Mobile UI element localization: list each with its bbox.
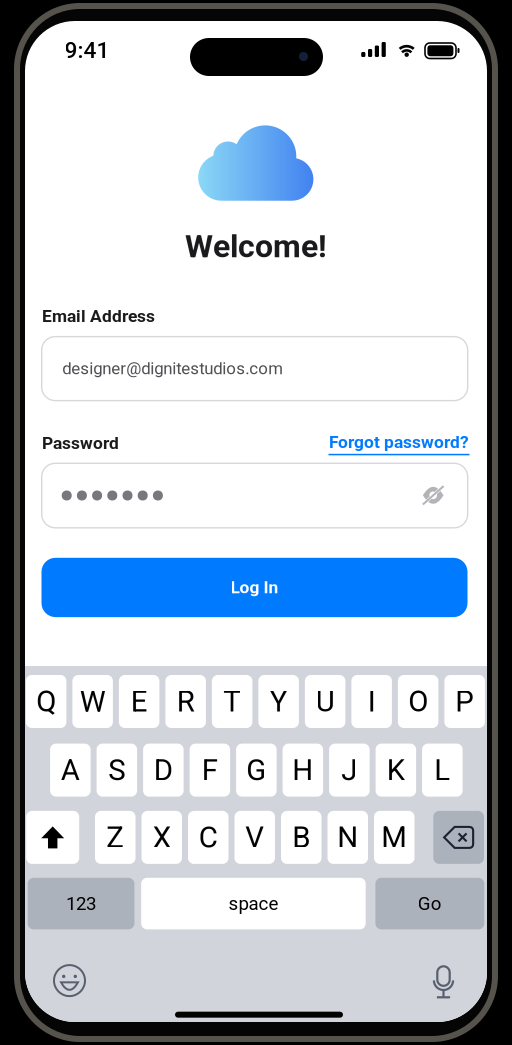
button[interactable]: K	[376, 744, 416, 797]
staticText: Go	[418, 893, 442, 915]
button[interactable]: X	[141, 811, 182, 864]
button[interactable]: Go	[375, 878, 484, 929]
button[interactable]: Q	[26, 675, 66, 728]
button[interactable]: D	[143, 744, 184, 797]
button[interactable]: A	[50, 744, 91, 797]
staticText: V	[245, 820, 264, 855]
button[interactable]: R	[165, 675, 206, 728]
staticText: Welcome!	[185, 227, 327, 265]
staticText: S	[108, 753, 125, 787]
staticText: D	[154, 753, 173, 787]
staticText: I	[368, 684, 376, 719]
staticText: J	[341, 753, 357, 787]
staticText: N	[337, 820, 358, 855]
button[interactable]: U	[305, 675, 345, 728]
staticText: L	[434, 753, 450, 787]
button[interactable]: E	[119, 675, 159, 728]
staticText: Log In	[230, 577, 278, 598]
staticText: E	[131, 684, 148, 719]
button[interactable]: S	[97, 744, 137, 797]
button[interactable]: C	[188, 811, 228, 864]
button[interactable]: Forgot password?	[328, 432, 469, 455]
button[interactable]: Shift	[26, 811, 79, 864]
staticText: Q	[36, 684, 56, 719]
staticText: space	[228, 893, 278, 915]
button[interactable]: B	[281, 811, 321, 864]
staticText: Password	[42, 433, 119, 453]
staticText: M	[381, 820, 407, 855]
button[interactable]: Emoji keyboard	[46, 958, 92, 1004]
button[interactable]: F	[190, 744, 230, 797]
staticText: T	[223, 684, 241, 719]
staticText: R	[177, 684, 195, 719]
button[interactable]: L	[422, 744, 463, 797]
button[interactable]: 123	[28, 878, 134, 929]
button[interactable]: Log In	[41, 558, 467, 617]
button[interactable]: O	[398, 675, 438, 728]
staticText: K	[387, 753, 405, 787]
staticText: O	[408, 684, 428, 719]
button[interactable]: space	[141, 878, 366, 929]
staticText: U	[316, 684, 335, 719]
button[interactable]: Delete	[433, 811, 484, 864]
staticText: P	[455, 684, 474, 719]
button[interactable]: W	[72, 675, 113, 728]
button[interactable]: I	[351, 675, 392, 728]
staticText: designer@dignitestudios.com	[62, 359, 283, 378]
button[interactable]: Dictate	[420, 959, 466, 1005]
button[interactable]: Z	[95, 811, 135, 864]
button[interactable]: H	[283, 744, 323, 797]
staticText: Email Address	[42, 306, 155, 326]
staticText: H	[292, 753, 313, 787]
button[interactable]: G	[236, 744, 277, 797]
staticText: F	[202, 753, 218, 787]
staticText: Forgot password?	[329, 432, 469, 452]
staticText: 9:41	[64, 37, 109, 64]
staticText: 123	[66, 893, 96, 915]
staticText: W	[80, 684, 106, 719]
button[interactable]: P	[444, 675, 485, 728]
staticText: A	[61, 753, 80, 787]
button[interactable]: M	[374, 811, 414, 864]
button[interactable]: N	[327, 811, 368, 864]
staticText: X	[153, 820, 171, 855]
staticText: G	[246, 753, 266, 787]
button[interactable]: T	[212, 675, 252, 728]
staticText: B	[292, 820, 310, 855]
staticText: Y	[270, 684, 288, 719]
staticText: C	[199, 820, 218, 855]
button[interactable]: J	[329, 744, 370, 797]
staticText: Z	[106, 820, 124, 855]
button[interactable]: V	[234, 811, 275, 864]
button[interactable]: Show password	[415, 477, 451, 513]
button[interactable]: Y	[258, 675, 299, 728]
